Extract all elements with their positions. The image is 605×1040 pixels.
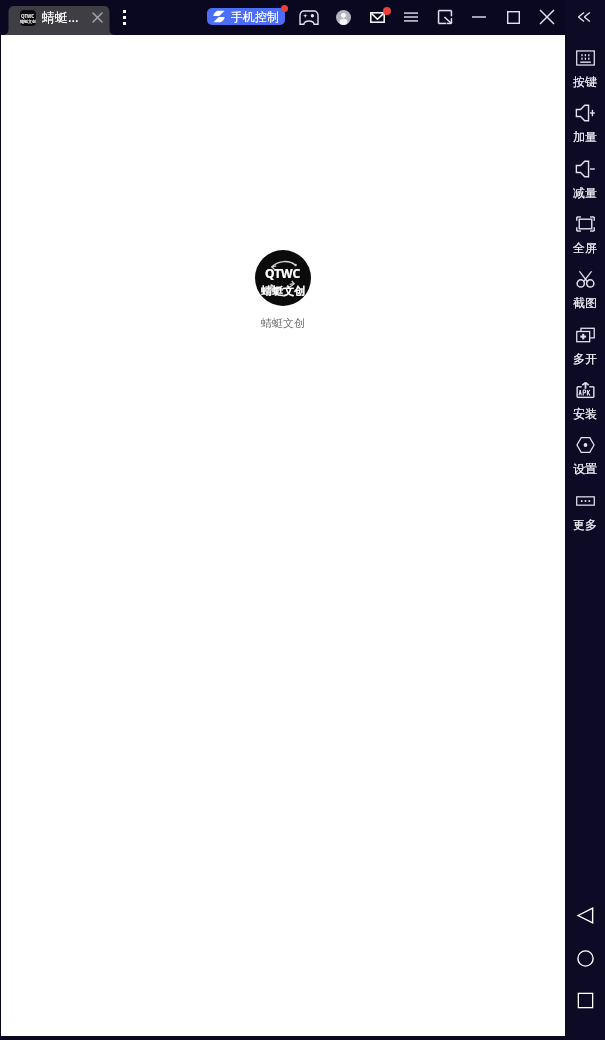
button[interactable]: Home xyxy=(565,943,605,973)
staticText: 蜻蜓文创 xyxy=(261,316,305,330)
button[interactable]: Messages xyxy=(366,6,388,28)
button[interactable]: More options xyxy=(114,7,134,27)
staticText: 多开 xyxy=(573,351,597,366)
button[interactable]: Back xyxy=(565,900,605,930)
button[interactable]: Close tab xyxy=(88,8,107,27)
staticText: 截图 xyxy=(573,295,597,310)
button[interactable]: Menu xyxy=(400,6,422,28)
button[interactable]: 全屏 xyxy=(565,216,605,255)
button[interactable]: Maximize xyxy=(502,6,524,28)
staticText: QTWC xyxy=(265,265,301,281)
button[interactable]: Recents xyxy=(565,985,605,1015)
button[interactable]: Open in window xyxy=(434,6,456,28)
button[interactable]: QTWC xyxy=(8,7,112,33)
button[interactable]: 更多 xyxy=(565,493,605,532)
button[interactable]: Games xyxy=(298,6,320,28)
button[interactable]: 加量 xyxy=(565,105,605,144)
button[interactable]: 多开 xyxy=(565,327,605,366)
staticText: QTWC xyxy=(21,13,35,19)
staticText: 蜻蜓... xyxy=(42,8,79,26)
button[interactable]: 减量 xyxy=(565,161,605,200)
staticText: 更多 xyxy=(573,517,597,532)
staticText: 设置 xyxy=(573,461,597,476)
button[interactable]: Account xyxy=(332,6,354,28)
button[interactable]: Collapse sidebar xyxy=(573,6,595,28)
staticText: 加量 xyxy=(573,129,597,144)
staticText: 全屏 xyxy=(573,240,597,255)
button[interactable]: 安装 xyxy=(565,382,605,421)
staticText: 减量 xyxy=(573,185,597,200)
button[interactable]: 按键 xyxy=(565,50,605,89)
staticText: 蜻蜓文创 xyxy=(261,284,305,298)
button[interactable]: 手机控制 xyxy=(207,8,285,25)
button[interactable]: QTWC xyxy=(255,250,311,306)
staticText: 手机控制 xyxy=(231,9,279,24)
button[interactable]: Minimize xyxy=(468,6,490,28)
staticText: 安装 xyxy=(573,406,597,421)
staticText: 蜻蜓文创 xyxy=(20,19,36,24)
staticText: 按键 xyxy=(573,74,597,89)
button[interactable]: 截图 xyxy=(565,271,605,310)
button[interactable]: 设置 xyxy=(565,437,605,476)
button[interactable]: Close xyxy=(536,6,558,28)
